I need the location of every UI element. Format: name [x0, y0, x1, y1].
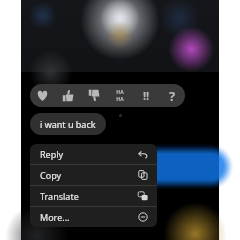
button[interactable]: Thumbs up reaction: [55, 84, 81, 107]
staticText: ?: [169, 87, 176, 105]
staticText: HA: [116, 96, 124, 103]
button[interactable]: More...: [30, 207, 157, 227]
button[interactable]: Love reaction: [30, 84, 55, 107]
button[interactable]: Thumbs down reaction: [81, 84, 107, 107]
staticText: !!: [143, 88, 150, 103]
staticText: Reply: [40, 148, 64, 160]
staticText: Copy: [40, 169, 62, 181]
button[interactable]: Translate: [30, 186, 157, 206]
staticText: More...: [40, 211, 70, 223]
button[interactable]: Copy: [30, 165, 157, 185]
button[interactable]: Exclamation reaction: [133, 84, 159, 107]
button[interactable]: Question reaction: [159, 84, 185, 107]
staticText: Translate: [40, 190, 79, 202]
button[interactable]: Haha reaction: [107, 84, 133, 107]
staticText: HA: [116, 89, 124, 96]
button[interactable]: i want u back: [30, 113, 106, 135]
button[interactable]: Reply: [30, 144, 157, 164]
staticText: i want u back: [40, 118, 96, 130]
